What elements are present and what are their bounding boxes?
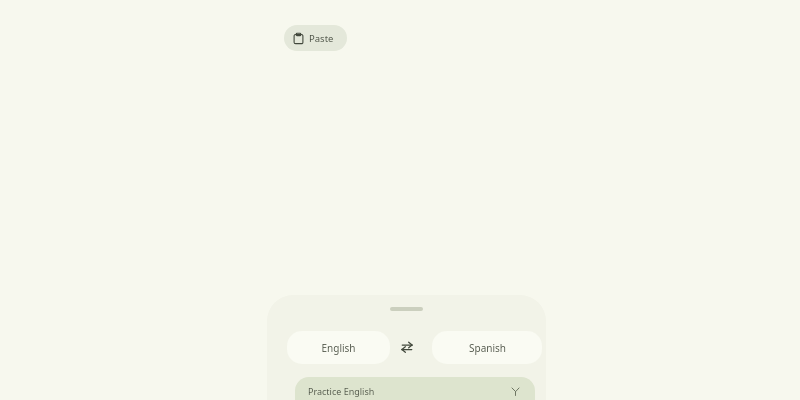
button[interactable]: Practice English bbox=[295, 377, 535, 400]
button[interactable]: English bbox=[287, 331, 390, 364]
button[interactable]: Paste bbox=[284, 25, 347, 51]
button[interactable]: Swap languages bbox=[395, 335, 419, 359]
staticText: Paste bbox=[309, 32, 334, 45]
staticText: Spanish bbox=[469, 341, 506, 355]
staticText: English bbox=[321, 341, 356, 355]
staticText: Practice English bbox=[308, 385, 375, 397]
button[interactable]: Spanish bbox=[432, 331, 542, 364]
